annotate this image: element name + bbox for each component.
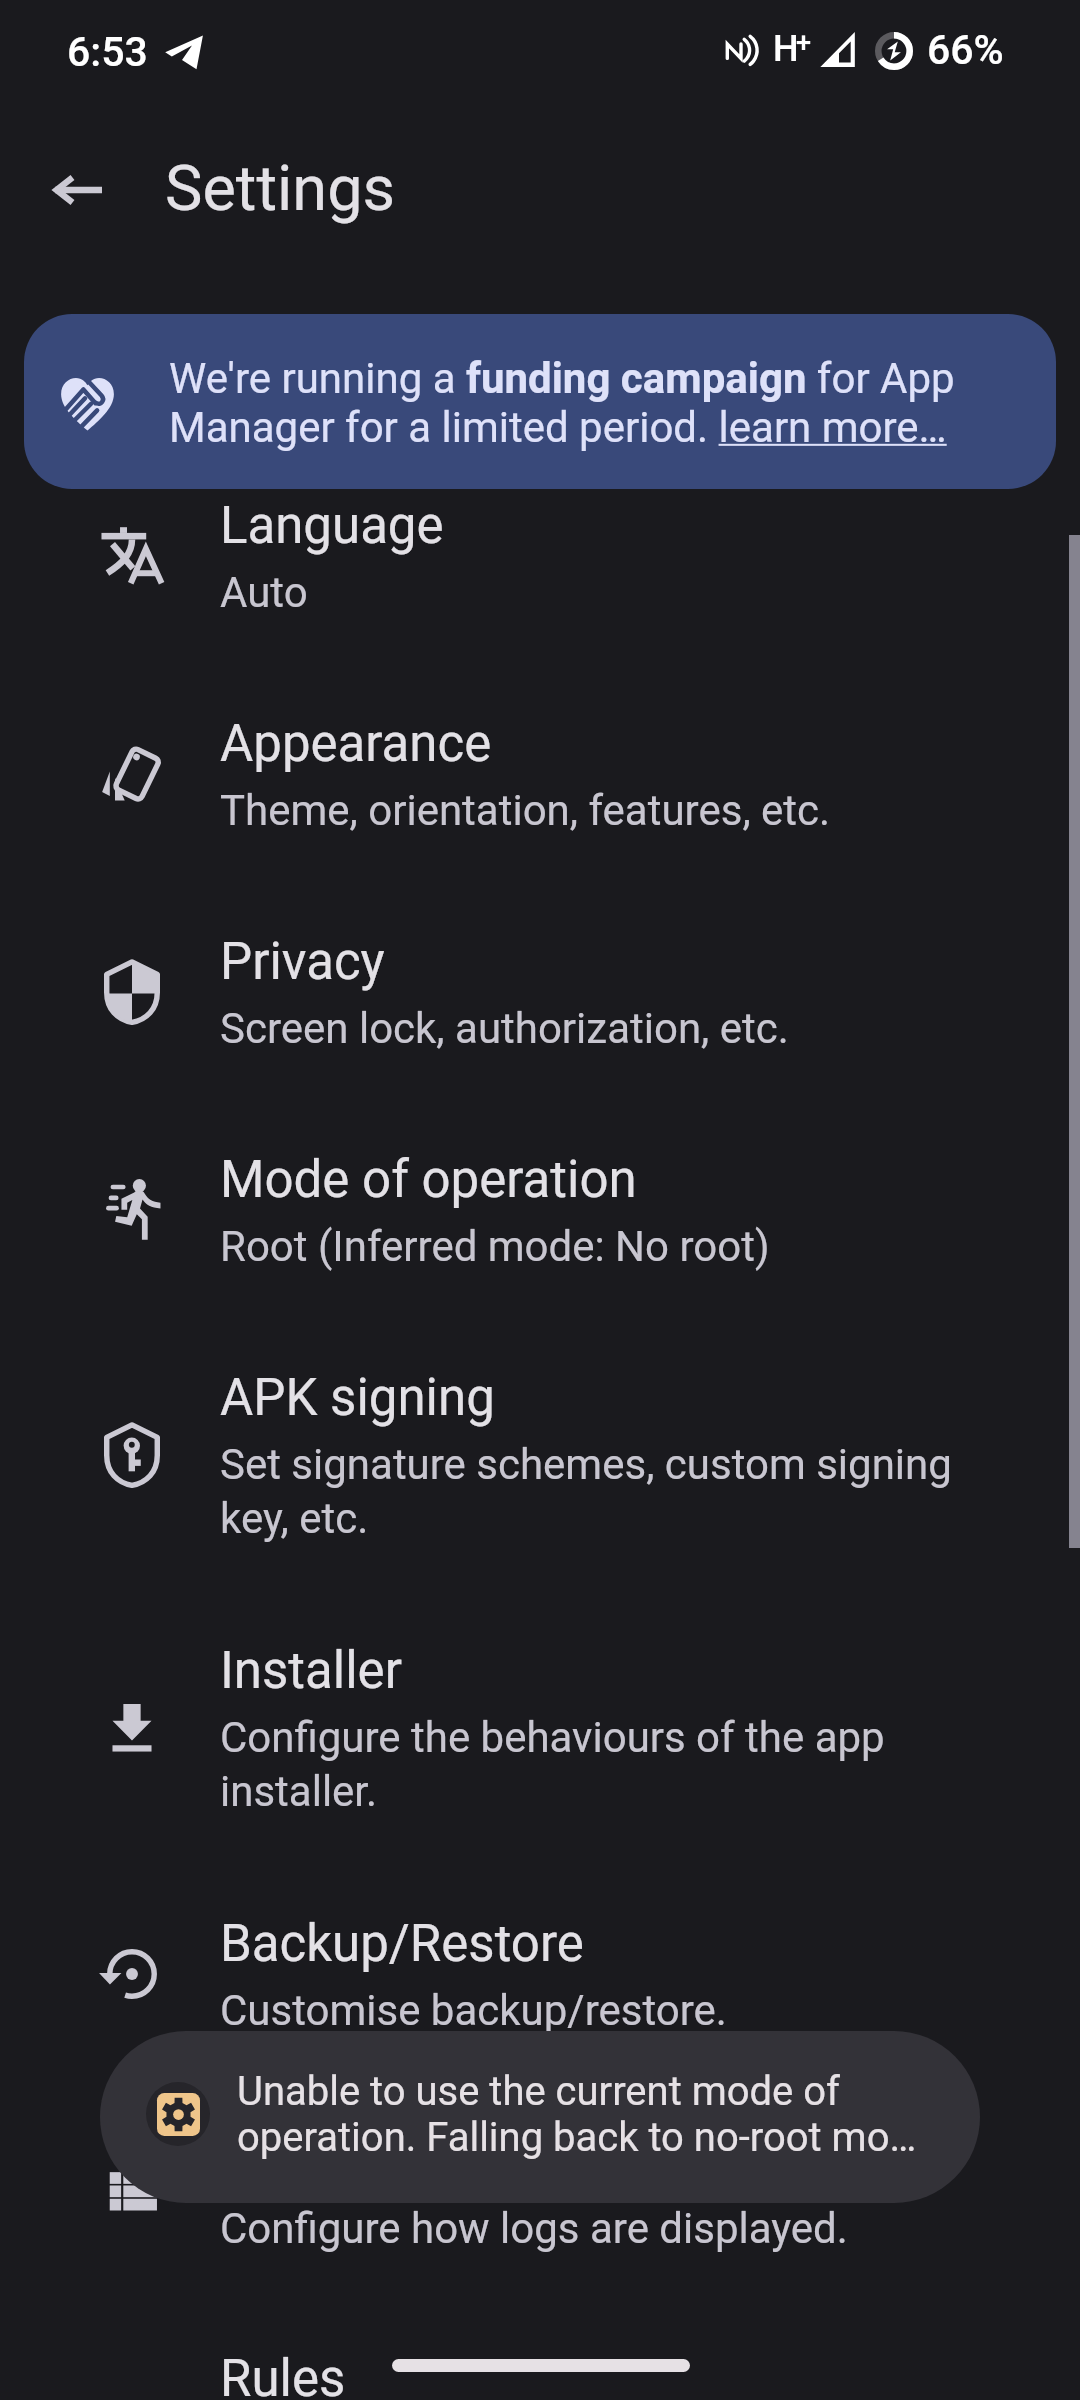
staticText: Screen lock, authorization, etc.	[220, 1004, 789, 1053]
button[interactable]: Privacy	[0, 894, 1080, 1089]
staticText: Appearance	[220, 714, 492, 774]
staticText: H	[773, 28, 799, 70]
staticText: +	[796, 27, 812, 59]
button[interactable]: We're running a funding campaign for App…	[24, 314, 1056, 489]
staticText: Set signature schemes, custom signing	[220, 1440, 952, 1489]
staticText: Root (Inferred mode: No root)	[220, 1222, 770, 1271]
staticText: Installer	[220, 1641, 402, 1701]
staticText: Configure how logs are displayed.	[220, 2204, 848, 2253]
staticText: Unable to use the current mode of operat…	[237, 2068, 932, 2161]
staticText: installer.	[220, 1767, 378, 1816]
button[interactable]: Mode of operation	[0, 1112, 1080, 1307]
button[interactable]: Rules	[0, 2311, 1080, 2400]
staticText: Theme, orientation, features, etc.	[220, 786, 831, 835]
button[interactable]: Log viewer	[0, 2094, 1080, 2289]
button[interactable]: Back	[31, 144, 123, 236]
button[interactable]: Backup/Restore	[0, 1876, 1080, 2071]
button[interactable]: Unable to use the current mode of operat…	[100, 2031, 980, 2203]
staticText: Language	[220, 496, 444, 556]
button[interactable]: Installer	[0, 1603, 1080, 1852]
staticText: Rules	[220, 2349, 346, 2400]
button[interactable]: APK signing	[0, 1330, 1080, 1579]
staticText: Privacy	[220, 932, 385, 992]
staticText: Mode of operation	[220, 1150, 637, 1210]
staticText: Configure the behaviours of the app	[220, 1713, 885, 1762]
staticText: key, etc.	[220, 1494, 369, 1543]
button[interactable]: Appearance	[0, 676, 1080, 871]
staticText: 66%	[927, 26, 1004, 74]
staticText: We're running a funding campaign for App…	[169, 354, 979, 452]
staticText: APK signing	[220, 1368, 495, 1428]
button[interactable]: Language	[0, 458, 1080, 653]
staticText: Backup/Restore	[220, 1914, 584, 1974]
staticText: Settings	[165, 152, 396, 226]
staticText: Log viewer	[220, 2132, 465, 2192]
staticText: Customise backup/restore.	[220, 1986, 727, 2035]
staticText: 6:53	[67, 28, 148, 76]
staticText: Auto	[220, 568, 308, 617]
